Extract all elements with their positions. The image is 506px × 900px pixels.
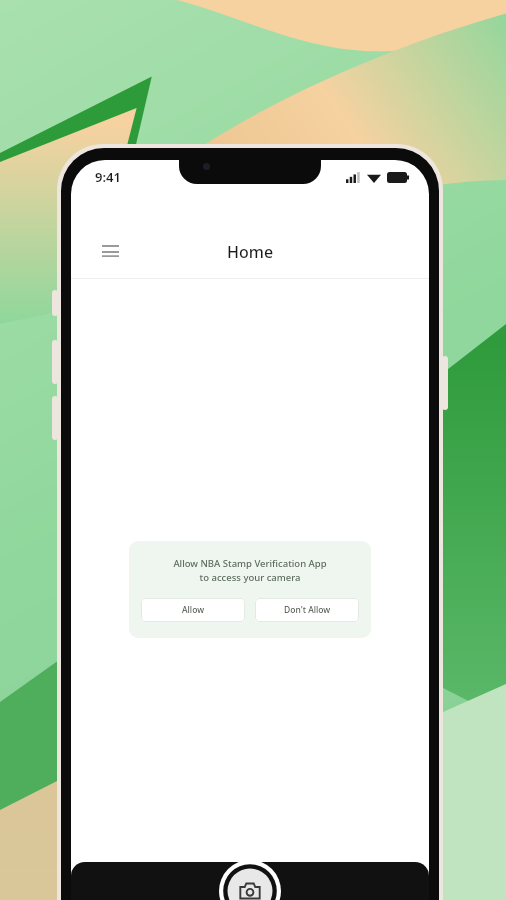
staticText: 9:41	[95, 168, 121, 186]
button[interactable]: Camera	[219, 860, 281, 900]
button[interactable]: Profile	[310, 862, 429, 900]
button[interactable]: Home	[71, 862, 191, 900]
button[interactable]: Don't Allow	[255, 598, 359, 622]
staticText: Allow NBA Stamp Verification App to acce…	[173, 557, 327, 584]
staticText: Don't Allow	[284, 604, 331, 616]
button[interactable]: Menu	[97, 239, 123, 265]
staticText: Allow	[182, 604, 205, 616]
staticText: Home	[227, 241, 274, 263]
button[interactable]: Allow	[141, 598, 245, 622]
